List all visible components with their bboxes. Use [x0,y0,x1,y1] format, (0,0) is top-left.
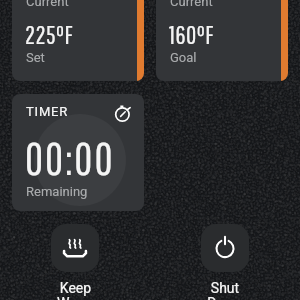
staticText: Set [26,50,45,65]
staticText: 160°F [169,20,214,49]
staticText: Shut Down [207,280,243,300]
button[interactable]: Shut down [150,224,300,300]
button[interactable]: Keep warm [0,224,150,300]
staticText: Remaining [26,184,88,199]
other: Keep warm [51,224,99,272]
button[interactable]: Set timer [112,103,132,123]
staticText: TIMER [26,104,69,119]
staticText: Goal [170,50,197,65]
button[interactable]: Current [156,0,288,81]
staticText: Current [170,0,213,9]
other: Shut down [201,224,249,272]
staticText: Current [26,0,69,9]
staticText: Keep Warm [57,280,94,300]
staticText: 00:00 [25,133,115,184]
staticText: 225°F [25,20,74,49]
button[interactable]: TIMER [12,94,144,211]
button[interactable]: Current [12,0,144,81]
